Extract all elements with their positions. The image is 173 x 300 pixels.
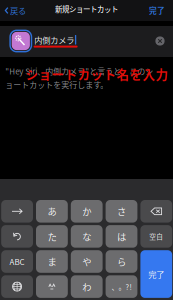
button[interactable]: わ <box>71 275 103 298</box>
button[interactable]: ABC <box>1 250 33 273</box>
button[interactable]: 完了 <box>141 0 173 21</box>
staticText: な <box>82 230 91 243</box>
staticText: わ <box>82 280 91 293</box>
staticText: あ <box>47 204 56 218</box>
staticText: ま <box>47 255 56 268</box>
staticText: か <box>82 204 91 218</box>
staticText: "Hey Siri、内側カメラ"と言うと、このシ <box>5 65 153 77</box>
staticText: は <box>117 230 126 243</box>
staticText: ら <box>117 255 126 268</box>
button[interactable]: ら <box>106 250 137 273</box>
button[interactable]: さ <box>106 200 137 223</box>
staticText: た <box>47 230 56 243</box>
button[interactable]: や <box>71 250 103 273</box>
button[interactable]: 、。?! <box>106 275 137 298</box>
button[interactable]: 取り消し <box>1 225 33 248</box>
staticText: ョートカットを実行します。 <box>5 79 108 90</box>
staticText: ショートカット名を入力 <box>25 65 168 83</box>
staticText: 戻る <box>10 4 26 16</box>
staticText: 、。?! <box>111 281 131 292</box>
button[interactable]: 戻る <box>0 0 31 21</box>
staticText: や <box>82 255 91 268</box>
button[interactable]: な <box>71 225 103 248</box>
staticText: さ <box>117 204 126 218</box>
button[interactable]: か <box>71 200 103 223</box>
staticText: ABC <box>10 256 25 267</box>
button[interactable]: 空白 <box>140 225 172 248</box>
button[interactable]: あ <box>36 200 68 223</box>
button[interactable]: 次候補 <box>1 200 33 223</box>
staticText: 完了 <box>149 5 165 16</box>
button[interactable]: 地球儀 <box>1 275 33 298</box>
button[interactable]: 削除 <box>140 200 172 223</box>
staticText: 完了 <box>148 268 164 280</box>
staticText: 新規ショートカット <box>55 3 118 14</box>
staticText: 空白 <box>149 232 163 241</box>
button[interactable]: た <box>36 225 68 248</box>
button[interactable]: 消去 <box>152 33 168 49</box>
button[interactable]: ま <box>36 250 68 273</box>
staticText: 内側カメラ <box>34 34 74 46</box>
button[interactable]: 完了 <box>140 250 172 298</box>
button[interactable]: は <box>106 225 137 248</box>
button[interactable]: 顔文字 <box>36 275 68 298</box>
